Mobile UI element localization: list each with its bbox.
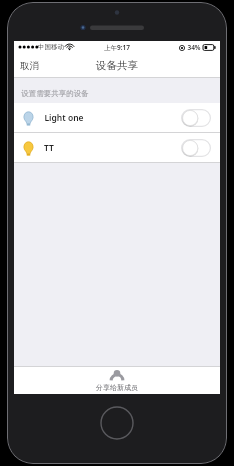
button[interactable]: TT	[14, 133, 220, 162]
staticText: 设置需要共享的设备	[21, 89, 89, 98]
button[interactable]: Toggle sharing	[181, 139, 211, 157]
button[interactable]: Toggle sharing	[181, 109, 211, 127]
staticText: TT	[44, 142, 54, 154]
staticText: 上午9:17	[104, 43, 130, 52]
staticText: 设备共享	[96, 59, 138, 72]
staticText: 34%	[187, 43, 201, 52]
button[interactable]: 取消	[14, 56, 47, 76]
staticText: Light one	[44, 112, 84, 124]
button[interactable]: 分享给新成员	[14, 366, 220, 394]
staticText: 取消	[20, 60, 39, 72]
button[interactable]: Light one	[14, 103, 220, 132]
staticText: 中国移动	[38, 43, 64, 51]
staticText: 分享给新成员	[96, 383, 138, 392]
